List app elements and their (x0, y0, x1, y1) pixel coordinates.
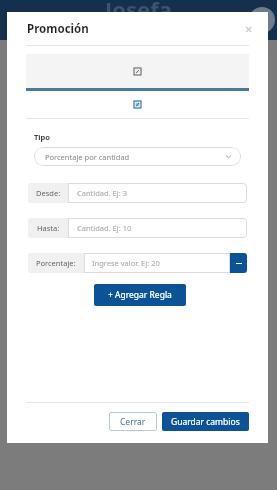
button[interactable]: + Agregar Regla (94, 284, 186, 306)
staticText: Porcentaje: (36, 258, 76, 268)
button[interactable]: Guardar cambios (162, 412, 249, 431)
button[interactable]: Vista previa (26, 91, 249, 118)
staticText: Cantidad. Ej: 3 (77, 188, 127, 198)
staticText: + Agregar Regla (108, 289, 172, 301)
button[interactable]: Cerrar (109, 412, 157, 431)
staticText: Promoción (27, 21, 89, 37)
button[interactable]: Quitar regla (230, 253, 247, 273)
staticText: Hasta: (37, 223, 60, 233)
button[interactable]: Porcentaje por cantidad (34, 147, 241, 166)
button[interactable]: Cerrar (239, 19, 259, 39)
button[interactable]: Imagen de promoción (26, 54, 249, 88)
button[interactable]: Cantidad. Ej: 10 (68, 218, 247, 238)
staticText: Ingrese valor. Ej: 20 (92, 258, 160, 268)
staticText: Josefa (105, 0, 172, 24)
button[interactable]: Ingrese valor. Ej: 20 (84, 253, 230, 273)
staticText: Tipo (34, 132, 50, 142)
staticText: Cantidad. Ej: 10 (77, 223, 132, 233)
staticText: Cerrar (120, 416, 146, 428)
staticText: Porcentaje por cantidad (45, 152, 225, 162)
button[interactable]: Account (249, 7, 275, 33)
button[interactable]: Cantidad. Ej: 3 (68, 183, 247, 203)
staticText: × (245, 20, 253, 38)
staticText: Desde: (36, 188, 61, 198)
staticText: Guardar cambios (171, 416, 240, 428)
